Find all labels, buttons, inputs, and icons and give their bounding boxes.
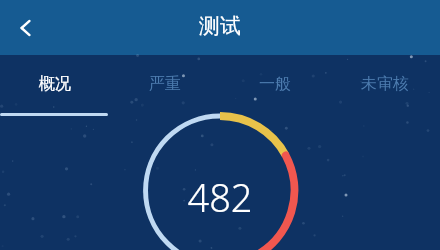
staticText: 未审核 bbox=[361, 74, 409, 94]
button[interactable]: 严重 bbox=[110, 55, 220, 112]
staticText: 482 bbox=[187, 171, 253, 223]
button[interactable]: 未审核 bbox=[330, 55, 440, 112]
staticText: 概况 bbox=[39, 74, 71, 94]
button[interactable]: 一般 bbox=[220, 55, 330, 112]
button[interactable]: Back bbox=[0, 2, 52, 54]
staticText: 一般 bbox=[259, 74, 291, 94]
staticText: 严重 bbox=[149, 74, 181, 94]
button[interactable]: 概况 bbox=[0, 55, 110, 112]
staticText: 测试 bbox=[199, 13, 241, 39]
